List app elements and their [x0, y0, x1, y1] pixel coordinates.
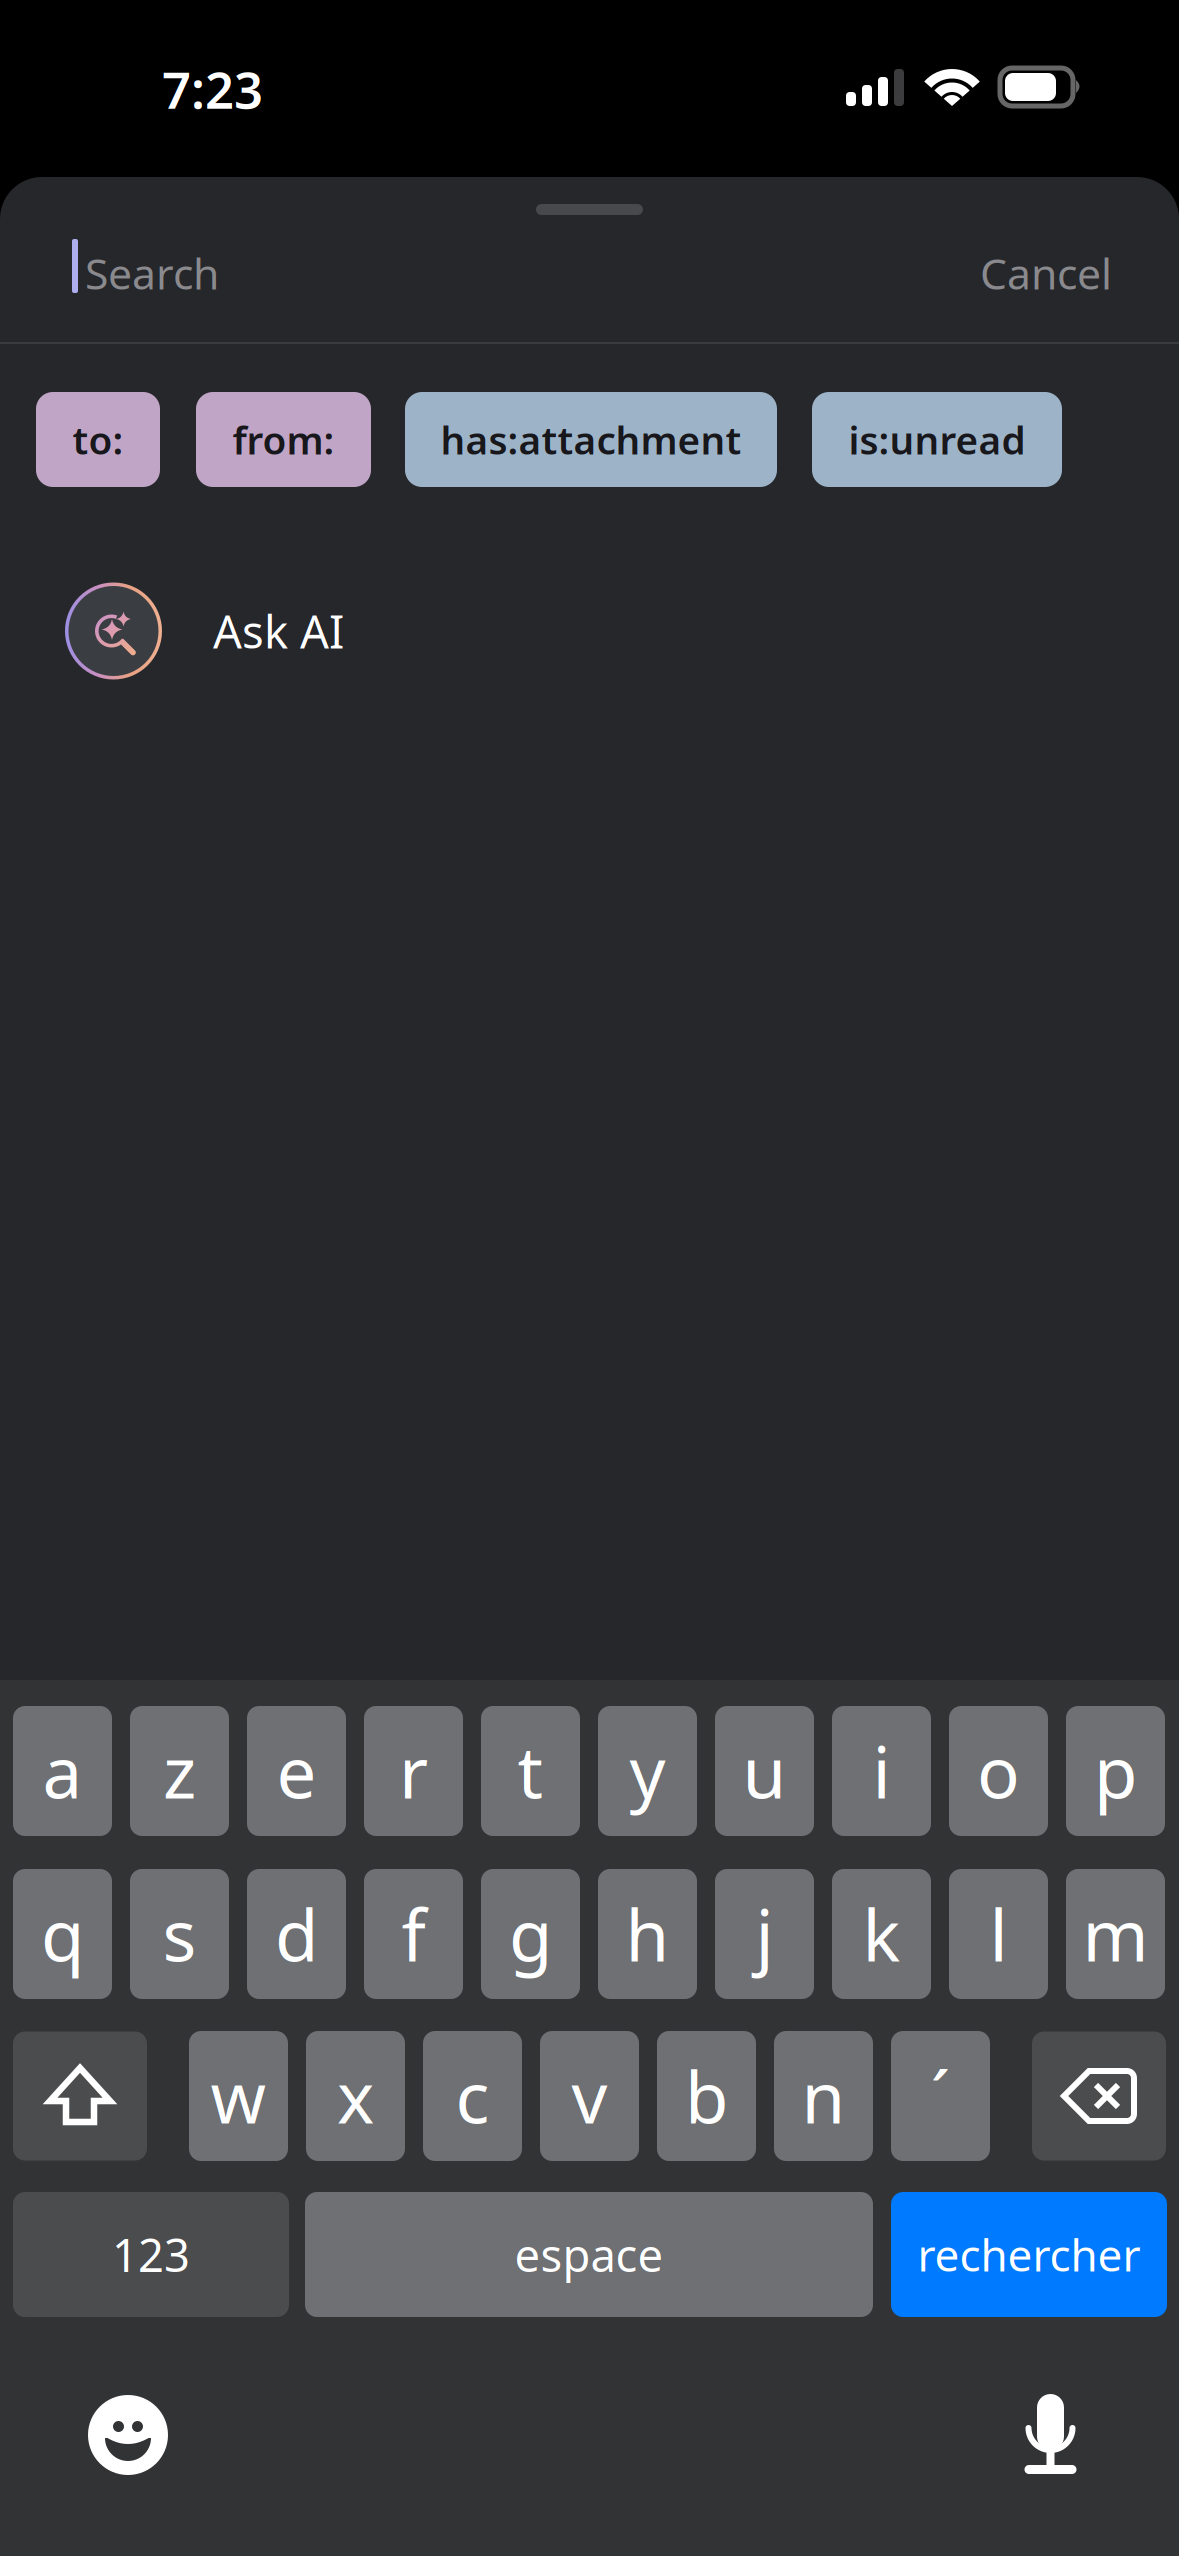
staticText: e — [276, 1724, 316, 1818]
staticText: 7:23 — [162, 55, 263, 123]
staticText: from: — [232, 414, 334, 465]
button[interactable]: Dictation — [1019, 2392, 1083, 2478]
staticText: o — [977, 1724, 1020, 1818]
button[interactable]: to: — [36, 392, 160, 487]
button[interactable]: m — [1066, 1869, 1165, 1999]
button[interactable]: a — [13, 1706, 112, 1836]
staticText: m — [1082, 1887, 1148, 1981]
staticText: z — [163, 1724, 196, 1818]
button[interactable]: Shift — [13, 2031, 147, 2160]
button[interactable]: k — [832, 1869, 931, 1999]
button[interactable]: i — [832, 1706, 931, 1836]
button[interactable]: o — [949, 1706, 1048, 1836]
staticText: y — [629, 1724, 665, 1818]
button[interactable]: z — [130, 1706, 229, 1836]
staticText: is:unread — [848, 414, 1025, 465]
button[interactable]: 123 — [13, 2192, 289, 2317]
button[interactable]: h — [598, 1869, 697, 1999]
staticText: t — [517, 1724, 543, 1818]
button[interactable]: y — [598, 1706, 697, 1836]
button[interactable]: x — [306, 2031, 405, 2161]
button[interactable]: w — [189, 2031, 288, 2161]
staticText: j — [755, 1887, 773, 1981]
button[interactable]: f — [364, 1869, 463, 1999]
staticText: l — [989, 1887, 1007, 1981]
staticText: h — [625, 1887, 669, 1981]
staticText: c — [455, 2049, 489, 2143]
button[interactable]: t — [481, 1706, 580, 1836]
button[interactable]: ´ — [891, 2031, 990, 2161]
button[interactable]: g — [481, 1869, 580, 1999]
staticText: n — [801, 2049, 845, 2143]
button[interactable]: is:unread — [812, 392, 1062, 487]
staticText: rechercher — [917, 2225, 1140, 2284]
staticText: i — [872, 1724, 890, 1818]
button[interactable]: Emoji — [88, 2395, 168, 2475]
staticText: b — [685, 2049, 728, 2143]
button[interactable]: v — [540, 2031, 639, 2161]
button[interactable]: Delete — [1032, 2031, 1166, 2160]
button[interactable]: rechercher — [891, 2192, 1167, 2317]
button[interactable]: u — [715, 1706, 814, 1836]
staticText: q — [41, 1887, 84, 1981]
button[interactable]: s — [130, 1869, 229, 1999]
button[interactable]: c — [423, 2031, 522, 2161]
button[interactable]: Ask AI — [0, 571, 1179, 691]
staticText: w — [210, 2049, 266, 2143]
staticText: has:attachment — [440, 414, 741, 465]
staticText: v — [571, 2049, 607, 2143]
staticText: ´ — [930, 2049, 950, 2143]
staticText: s — [162, 1887, 196, 1981]
staticText: k — [862, 1887, 900, 1981]
staticText: u — [742, 1724, 786, 1818]
button[interactable]: Cancel — [700, 238, 1112, 308]
button[interactable]: d — [247, 1869, 346, 1999]
button[interactable]: r — [364, 1706, 463, 1836]
button[interactable]: j — [715, 1869, 814, 1999]
button[interactable]: has:attachment — [405, 392, 777, 487]
button[interactable]: p — [1066, 1706, 1165, 1836]
staticText: f — [401, 1887, 425, 1981]
button[interactable]: e — [247, 1706, 346, 1836]
staticText: espace — [514, 2224, 663, 2285]
button[interactable]: l — [949, 1869, 1048, 1999]
staticText: p — [1094, 1724, 1137, 1818]
button[interactable]: b — [657, 2031, 756, 2161]
staticText: g — [509, 1887, 552, 1981]
staticText: Search — [85, 245, 219, 301]
button[interactable]: from: — [196, 392, 371, 487]
button[interactable]: q — [13, 1869, 112, 1999]
staticText: to: — [72, 414, 123, 465]
staticText: d — [275, 1887, 318, 1981]
staticText: a — [42, 1724, 82, 1818]
staticText: 123 — [112, 2224, 190, 2285]
staticText: Ask AI — [213, 601, 344, 661]
staticText: Cancel — [980, 245, 1112, 301]
button[interactable]: espace — [305, 2192, 873, 2317]
staticText: r — [399, 1724, 428, 1818]
staticText: x — [337, 2049, 374, 2143]
button[interactable]: n — [774, 2031, 873, 2161]
